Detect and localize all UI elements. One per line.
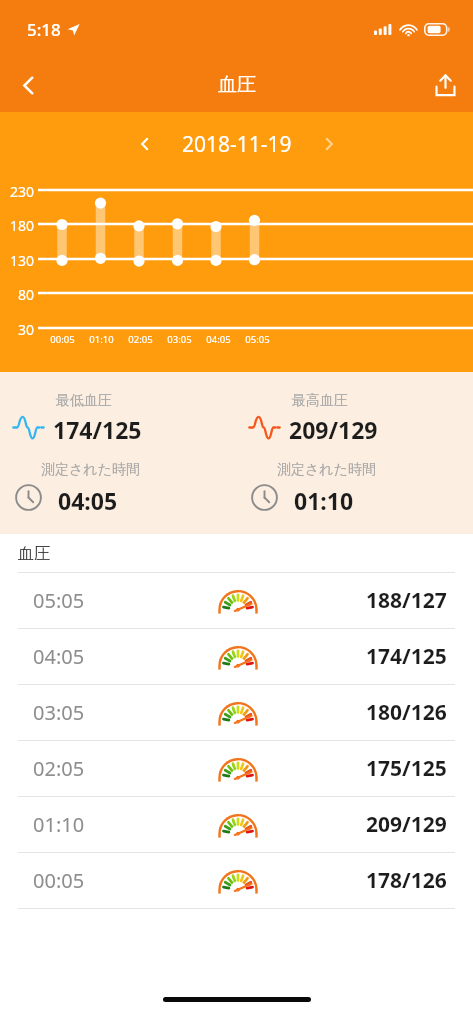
staticText: 180 xyxy=(0,216,34,235)
staticText: 01:10 xyxy=(82,333,121,346)
staticText: 209/129 xyxy=(366,810,447,839)
button[interactable]: Previous day xyxy=(126,125,164,163)
staticText: 02:05 xyxy=(33,755,85,782)
staticText: 03:05 xyxy=(160,333,199,346)
button[interactable]: 最低血圧 xyxy=(0,372,236,534)
button[interactable]: Next day xyxy=(310,125,348,163)
staticText: 血圧 xyxy=(218,73,256,97)
staticText: 188/127 xyxy=(366,586,447,615)
staticText: 01:10 xyxy=(33,811,85,838)
button[interactable]: 02:05 xyxy=(0,741,473,796)
staticText: 最高血圧 xyxy=(292,392,348,410)
button[interactable]: 04:05 xyxy=(0,629,473,684)
staticText: 209/129 xyxy=(289,414,378,445)
button[interactable]: 00:05 xyxy=(0,853,473,908)
staticText: 01:10 xyxy=(294,485,354,516)
button[interactable]: 01:10 xyxy=(0,797,473,852)
staticText: 5:18 xyxy=(27,18,61,41)
staticText: 03:05 xyxy=(33,699,85,726)
staticText: 05:05 xyxy=(33,587,85,614)
staticText: 30 xyxy=(0,320,34,339)
staticText: 00:05 xyxy=(33,867,85,894)
staticText: 05:05 xyxy=(238,333,277,346)
staticText: 最低血圧 xyxy=(56,392,112,410)
staticText: 180/126 xyxy=(366,698,447,727)
staticText: 04:05 xyxy=(58,485,118,516)
button[interactable]: 05:05 xyxy=(0,573,473,628)
staticText: 血圧 xyxy=(18,544,50,564)
staticText: 178/126 xyxy=(366,866,447,895)
staticText: 04:05 xyxy=(33,643,85,670)
staticText: 04:05 xyxy=(199,333,238,346)
staticText: 測定された時間 xyxy=(41,461,140,479)
staticText: 174/125 xyxy=(366,642,447,671)
button[interactable]: 03:05 xyxy=(0,685,473,740)
staticText: 測定された時間 xyxy=(277,461,376,479)
staticText: 2018-11-19 xyxy=(182,130,292,159)
staticText: 80 xyxy=(0,285,34,304)
staticText: 00:05 xyxy=(43,333,82,346)
staticText: 174/125 xyxy=(53,414,142,445)
staticText: 02:05 xyxy=(121,333,160,346)
button[interactable]: Share xyxy=(417,58,473,112)
staticText: 130 xyxy=(0,251,34,270)
staticText: 175/125 xyxy=(366,754,447,783)
button[interactable]: 最高血圧 xyxy=(236,372,473,534)
button[interactable]: Back xyxy=(0,58,56,112)
staticText: 230 xyxy=(0,182,34,201)
